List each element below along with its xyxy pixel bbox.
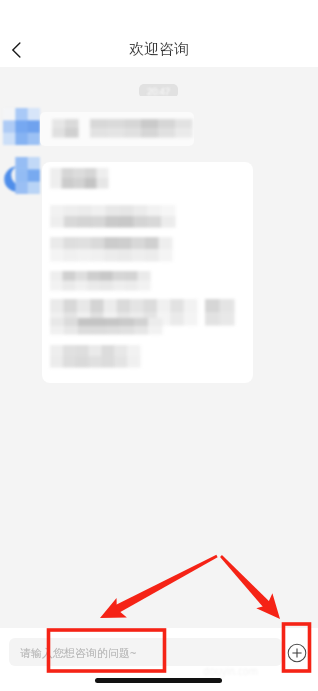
staticText: douyin.com (203, 664, 259, 678)
button[interactable]: Welcome message card (42, 162, 253, 383)
staticText: 请输入您想咨询的问题~ (20, 645, 137, 660)
staticText: 20:47 (147, 85, 171, 97)
staticText: 欢迎咨询 (129, 40, 189, 59)
button[interactable]: More options (287, 643, 307, 663)
button[interactable]: Back (3, 36, 31, 64)
button[interactable]: 请输入您想咨询的问题~ (9, 638, 282, 666)
button[interactable]: Message from support (40, 112, 194, 146)
